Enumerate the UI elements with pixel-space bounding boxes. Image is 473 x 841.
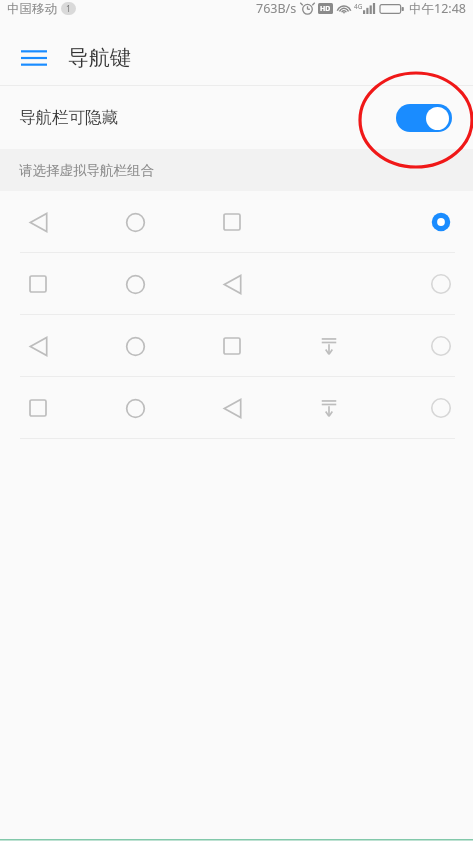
- button[interactable]: Menu: [12, 36, 56, 80]
- staticText: 中午12:48: [409, 0, 466, 17]
- staticText: 请选择虚拟导航栏组合: [19, 162, 154, 179]
- button[interactable]: 导航栏可隐藏: [0, 86, 473, 149]
- staticText: HD: [320, 4, 331, 14]
- staticText: 导航栏可隐藏: [19, 107, 118, 128]
- staticText: 中国移动: [7, 1, 57, 17]
- button[interactable]: Select layout: [430, 397, 452, 419]
- button[interactable]: Navigation bar can be hidden toggle: [396, 104, 452, 132]
- button[interactable]: Selected layout: [430, 211, 452, 233]
- button[interactable]: Select layout: [0, 377, 473, 439]
- button[interactable]: Select layout: [0, 253, 473, 315]
- staticText: 4G: [354, 2, 363, 11]
- button[interactable]: Select layout: [0, 315, 473, 377]
- staticText: 导航键: [68, 45, 131, 71]
- button[interactable]: Select layout: [430, 273, 452, 295]
- button[interactable]: Select layout: [430, 335, 452, 357]
- staticText: 1: [66, 3, 71, 15]
- button[interactable]: Selected layout: [0, 191, 473, 253]
- staticText: 763B/s: [256, 0, 297, 17]
